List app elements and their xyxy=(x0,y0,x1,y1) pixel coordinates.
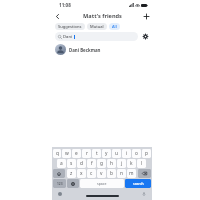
button[interactable]: Backspace xyxy=(138,169,151,178)
staticText: l xyxy=(141,160,143,167)
button[interactable]: i xyxy=(122,149,131,158)
button[interactable]: Dani xyxy=(55,32,138,41)
staticText: All xyxy=(112,24,117,29)
staticText: v xyxy=(100,170,103,177)
button[interactable]: space xyxy=(80,179,124,188)
button[interactable]: Emoji keyboard xyxy=(67,179,79,188)
staticText: d xyxy=(80,160,83,167)
staticText: x xyxy=(80,170,83,177)
staticText: b xyxy=(110,170,113,177)
staticText: s xyxy=(70,160,73,167)
button[interactable]: d xyxy=(77,159,86,168)
button[interactable]: All xyxy=(109,23,120,30)
staticText: m xyxy=(129,170,134,177)
staticText: p xyxy=(145,150,148,157)
button[interactable]: b xyxy=(107,169,116,178)
staticText: Dani xyxy=(63,34,73,40)
staticText: i xyxy=(126,150,128,157)
staticText: j xyxy=(121,160,123,167)
staticText: Suggestions xyxy=(58,24,82,29)
button[interactable]: x xyxy=(77,169,86,178)
staticText: search xyxy=(133,181,144,186)
button[interactable]: Voice input xyxy=(141,191,147,197)
staticText: e xyxy=(75,150,78,157)
staticText: c xyxy=(90,170,93,177)
button[interactable]: g xyxy=(97,159,106,168)
button[interactable]: w xyxy=(62,149,71,158)
staticText: 11:08 xyxy=(59,2,71,8)
button[interactable]: a xyxy=(57,159,66,168)
button[interactable]: s xyxy=(67,159,76,168)
button[interactable]: e xyxy=(72,149,81,158)
staticText: o xyxy=(135,150,138,157)
button[interactable]: u xyxy=(112,149,121,158)
button[interactable]: search xyxy=(125,179,151,188)
staticText: n xyxy=(120,170,123,177)
button[interactable]: f xyxy=(87,159,96,168)
staticText: r xyxy=(86,150,88,157)
button[interactable]: n xyxy=(117,169,126,178)
button[interactable]: q xyxy=(53,149,61,158)
button[interactable]: Mutual xyxy=(87,23,107,30)
button[interactable]: m xyxy=(127,169,136,178)
button[interactable]: Numbers xyxy=(53,179,66,188)
button[interactable]: t xyxy=(92,149,101,158)
button[interactable]: p xyxy=(142,149,151,158)
button[interactable]: h xyxy=(107,159,116,168)
button[interactable]: k xyxy=(127,159,136,168)
staticText: 123 xyxy=(57,182,63,186)
button[interactable]: Settings xyxy=(141,32,149,40)
button[interactable]: o xyxy=(132,149,141,158)
button[interactable]: y xyxy=(102,149,111,158)
staticText: Mutual xyxy=(90,24,104,29)
staticText: f xyxy=(91,160,93,167)
button[interactable]: c xyxy=(87,169,96,178)
staticText: y xyxy=(105,150,108,157)
button[interactable]: Add friend xyxy=(141,10,152,22)
staticText: k xyxy=(130,160,133,167)
button[interactable]: l xyxy=(137,159,146,168)
button[interactable]: Emoji xyxy=(57,191,63,197)
button[interactable]: v xyxy=(97,169,106,178)
staticText: h xyxy=(110,160,113,167)
staticText: w xyxy=(65,150,69,157)
staticText: u xyxy=(115,150,118,157)
button[interactable]: Back xyxy=(52,10,63,22)
staticText: q xyxy=(56,150,59,157)
button[interactable]: z xyxy=(67,169,76,178)
button[interactable]: Suggestions xyxy=(55,23,85,30)
button[interactable]: Shift xyxy=(53,169,65,178)
button[interactable]: Dani Beckman xyxy=(52,43,152,56)
staticText: z xyxy=(70,170,73,177)
staticText: t xyxy=(96,150,98,157)
staticText: space xyxy=(97,181,107,186)
staticText: g xyxy=(100,160,103,167)
staticText: Dani Beckman xyxy=(69,47,101,53)
staticText: a xyxy=(60,160,63,167)
button[interactable]: r xyxy=(82,149,91,158)
button[interactable]: j xyxy=(117,159,126,168)
staticText: Matt's friends xyxy=(83,12,122,20)
